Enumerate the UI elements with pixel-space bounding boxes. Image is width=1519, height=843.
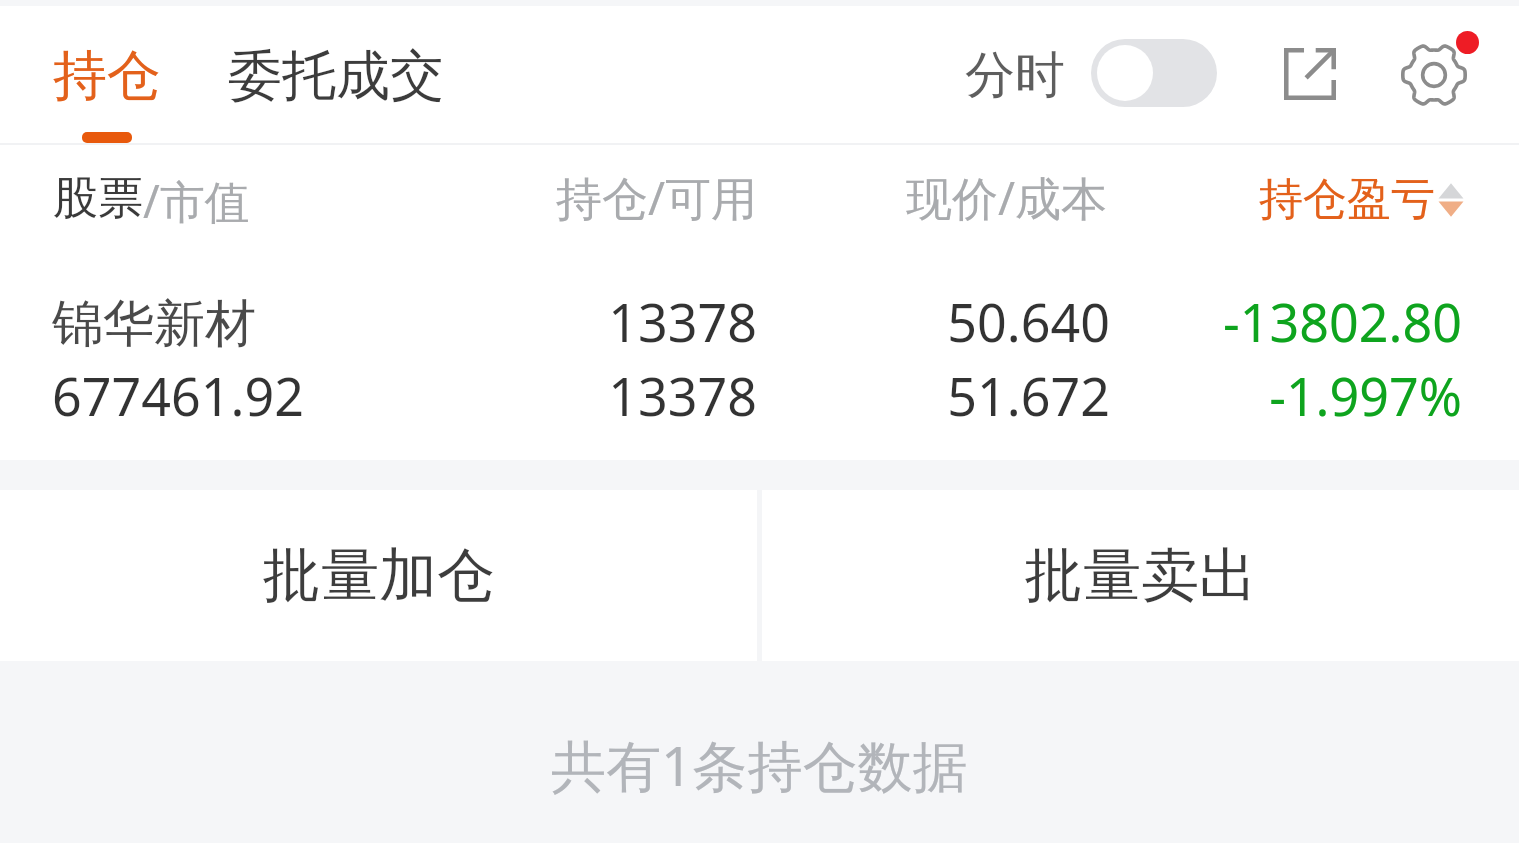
staticText: 批量加仓: [263, 539, 495, 612]
staticText: 持仓: [53, 42, 161, 110]
staticText: 现价/成本: [906, 166, 1108, 229]
staticText: 分时: [965, 44, 1065, 107]
button[interactable]: 分时 toggle: [1091, 39, 1217, 107]
staticText: 持仓/可用: [556, 166, 758, 229]
staticText: -1.997%: [1042, 360, 1462, 431]
staticText: 50.640: [690, 286, 1110, 357]
staticText: 持仓盈亏: [1259, 172, 1435, 227]
staticText: 委托成交: [228, 42, 444, 110]
staticText: 批量卖出: [1025, 539, 1257, 612]
staticText: 13378: [337, 286, 757, 357]
staticText: 共有1条持仓数据: [551, 727, 968, 802]
button[interactable]: 持仓: [30, 20, 184, 132]
staticText: 13378: [337, 360, 757, 431]
staticText: -13802.80: [1042, 286, 1462, 357]
button[interactable]: 分时: [945, 26, 1085, 125]
staticText: /市值: [143, 170, 250, 231]
button[interactable]: 批量卖出: [762, 490, 1519, 661]
button[interactable]: Share: [1264, 28, 1356, 120]
button[interactable]: 持仓盈亏: [1239, 152, 1484, 247]
staticText: 677461.92: [52, 360, 304, 431]
button[interactable]: Settings: [1388, 29, 1480, 121]
staticText: 51.672: [690, 360, 1110, 431]
staticText: 股票: [53, 170, 143, 227]
staticText: 锦华新材: [52, 292, 256, 356]
button[interactable]: 委托成交: [205, 20, 467, 132]
button[interactable]: 批量加仓: [0, 490, 757, 661]
button[interactable]: 锦华新材: [0, 272, 1519, 452]
